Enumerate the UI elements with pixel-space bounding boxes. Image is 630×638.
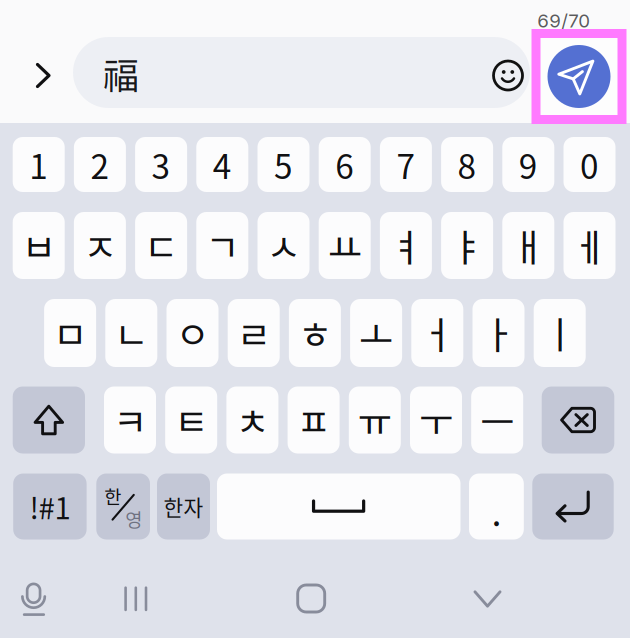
button[interactable]: Expand toolbar bbox=[19, 40, 67, 110]
staticText: ㅇ bbox=[175, 306, 209, 360]
button[interactable]: ㅣ bbox=[534, 299, 586, 367]
staticText: ㅂ bbox=[22, 218, 56, 273]
staticText: ㅎ bbox=[298, 306, 332, 360]
button[interactable]: Hide keyboard bbox=[449, 564, 525, 634]
button[interactable]: ㄱ bbox=[196, 212, 248, 279]
staticText: 2 bbox=[90, 140, 109, 189]
button[interactable]: Voice input bbox=[0, 565, 72, 635]
button[interactable]: ㅁ bbox=[44, 299, 96, 367]
staticText: ㅌ bbox=[174, 393, 208, 447]
staticText: ㅡ bbox=[480, 393, 514, 447]
button[interactable]: 5 bbox=[257, 137, 309, 192]
button[interactable]: 9 bbox=[502, 137, 554, 192]
button[interactable]: Emoji bbox=[486, 40, 530, 111]
staticText: ㅈ bbox=[83, 218, 117, 273]
button[interactable]: ㅅ bbox=[257, 212, 309, 279]
staticText: ㅑ bbox=[450, 218, 484, 273]
staticText: ㅋ bbox=[113, 393, 147, 447]
button[interactable]: ㅓ bbox=[411, 299, 463, 367]
button[interactable]: ㄹ bbox=[228, 299, 280, 367]
staticText: ㅗ bbox=[359, 306, 393, 360]
staticText: 9 bbox=[519, 140, 538, 189]
staticText: 1 bbox=[29, 140, 48, 189]
staticText: ㅣ bbox=[543, 306, 577, 360]
staticText: . bbox=[491, 484, 501, 536]
staticText: ㅠ bbox=[358, 393, 392, 447]
button[interactable]: ㅛ bbox=[319, 212, 371, 279]
button[interactable]: ㅡ bbox=[471, 386, 523, 453]
button[interactable]: Home bbox=[273, 563, 349, 633]
staticText: ㄱ bbox=[205, 218, 239, 273]
button[interactable]: 한자 bbox=[157, 473, 210, 539]
button[interactable]: ㅏ bbox=[472, 299, 524, 367]
button[interactable]: Shift bbox=[13, 386, 85, 453]
staticText: ㅊ bbox=[235, 393, 269, 447]
button[interactable]: Korean English toggle bbox=[96, 473, 150, 539]
button[interactable]: ㅇ bbox=[166, 299, 218, 367]
button[interactable]: 8 bbox=[441, 137, 493, 192]
staticText: ㄷ bbox=[144, 218, 178, 273]
button[interactable]: ㄴ bbox=[105, 299, 157, 367]
button[interactable]: . bbox=[469, 473, 524, 539]
staticText: ㄴ bbox=[114, 306, 148, 360]
button[interactable]: !#1 bbox=[13, 473, 87, 539]
button[interactable]: ㅂ bbox=[13, 212, 65, 279]
staticText: 영 bbox=[125, 505, 142, 532]
button[interactable]: 4 bbox=[196, 137, 248, 192]
staticText: ㄹ bbox=[237, 306, 271, 360]
staticText: 8 bbox=[458, 140, 477, 189]
staticText: 0 bbox=[580, 140, 599, 189]
button[interactable]: ㅈ bbox=[74, 212, 126, 279]
button[interactable]: 7 bbox=[380, 137, 432, 192]
button[interactable]: ㅔ bbox=[563, 212, 615, 279]
staticText: 7 bbox=[396, 140, 415, 189]
button[interactable]: ㅊ bbox=[226, 386, 278, 453]
button[interactable]: ㅐ bbox=[502, 212, 554, 279]
staticText: ㅁ bbox=[53, 306, 87, 360]
staticText: ㅓ bbox=[420, 306, 454, 360]
button[interactable]: 6 bbox=[319, 137, 371, 192]
button[interactable]: ㅜ bbox=[410, 386, 462, 453]
staticText: 한자 bbox=[163, 491, 203, 522]
button[interactable]: Backspace bbox=[542, 386, 614, 453]
button[interactable]: ㅍ bbox=[288, 386, 340, 453]
staticText: ㅜ bbox=[419, 393, 453, 447]
button[interactable]: Recent apps bbox=[98, 564, 174, 634]
staticText: ㅅ bbox=[266, 218, 300, 273]
button[interactable]: ㅑ bbox=[441, 212, 493, 279]
staticText: ㅕ bbox=[389, 218, 423, 273]
staticText: ㅐ bbox=[511, 218, 545, 273]
staticText: ㅔ bbox=[572, 218, 606, 273]
staticText: 4 bbox=[213, 140, 232, 189]
staticText: ㅏ bbox=[481, 306, 515, 360]
button[interactable]: ㅎ bbox=[289, 299, 341, 367]
button[interactable]: ㅗ bbox=[350, 299, 402, 367]
staticText: 3 bbox=[152, 140, 171, 189]
button[interactable]: ㅠ bbox=[349, 386, 401, 453]
button[interactable]: 2 bbox=[74, 137, 126, 192]
staticText: ㅛ bbox=[328, 218, 362, 273]
staticText: ㅍ bbox=[297, 393, 331, 447]
button[interactable]: Enter bbox=[532, 473, 614, 539]
staticText: 한 bbox=[104, 482, 121, 509]
button[interactable]: 0 bbox=[563, 137, 615, 192]
staticText: 6 bbox=[335, 140, 354, 189]
staticText: 69/70 bbox=[537, 9, 590, 32]
button[interactable]: ㅋ bbox=[104, 386, 156, 453]
button[interactable]: Send bbox=[531, 29, 626, 124]
staticText: 5 bbox=[274, 140, 293, 189]
button[interactable]: ㄷ bbox=[135, 212, 187, 279]
staticText: !#1 bbox=[29, 485, 70, 528]
button[interactable]: 1 bbox=[13, 137, 65, 192]
button[interactable]: ㅕ bbox=[380, 212, 432, 279]
button[interactable]: ㅌ bbox=[165, 386, 217, 453]
button[interactable]: Space bbox=[217, 473, 460, 539]
staticText: 福 bbox=[103, 47, 139, 99]
button[interactable]: 3 bbox=[135, 137, 187, 192]
